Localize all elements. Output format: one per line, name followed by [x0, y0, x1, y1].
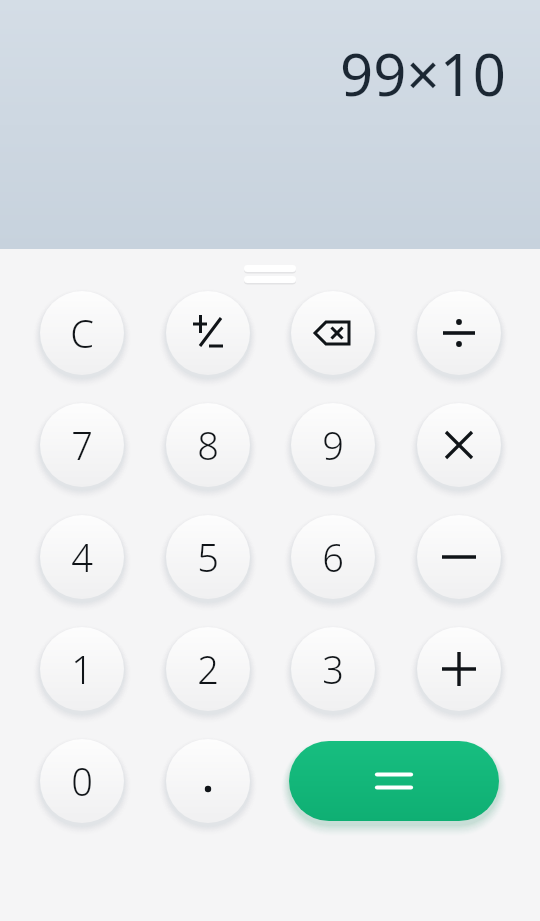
staticText: 8 — [197, 419, 219, 471]
button[interactable]: 1 — [40, 627, 124, 711]
staticText: 1 — [71, 643, 93, 695]
button[interactable]: Equals — [289, 741, 499, 821]
button[interactable]: 3 — [291, 627, 375, 711]
staticText: 5 — [197, 531, 219, 583]
button[interactable]: 5 — [166, 515, 250, 599]
staticText: 9 — [322, 419, 344, 471]
button[interactable]: 2 — [166, 627, 250, 711]
button[interactable]: 7 — [40, 403, 124, 487]
button[interactable]: Plus minus — [166, 291, 250, 375]
button[interactable]: 8 — [166, 403, 250, 487]
button[interactable]: C — [40, 291, 124, 375]
staticText: 2 — [197, 643, 219, 695]
staticText: 0 — [71, 755, 93, 807]
button[interactable]: Divide — [417, 291, 501, 375]
staticText: 6 — [322, 531, 344, 583]
staticText: 4 — [71, 531, 93, 583]
button[interactable]: 9 — [291, 403, 375, 487]
button[interactable]: 0 — [40, 739, 124, 823]
staticText: 3 — [322, 643, 344, 695]
button[interactable]: Backspace — [291, 291, 375, 375]
button[interactable]: Plus — [417, 627, 501, 711]
staticText: 7 — [71, 419, 93, 471]
button[interactable]: 4 — [40, 515, 124, 599]
staticText: C — [70, 307, 94, 359]
button[interactable]: 6 — [291, 515, 375, 599]
button[interactable]: Multiply — [417, 403, 501, 487]
staticText: 99×10 — [340, 34, 506, 113]
button[interactable]: Minus — [417, 515, 501, 599]
button[interactable]: Decimal point — [166, 739, 250, 823]
